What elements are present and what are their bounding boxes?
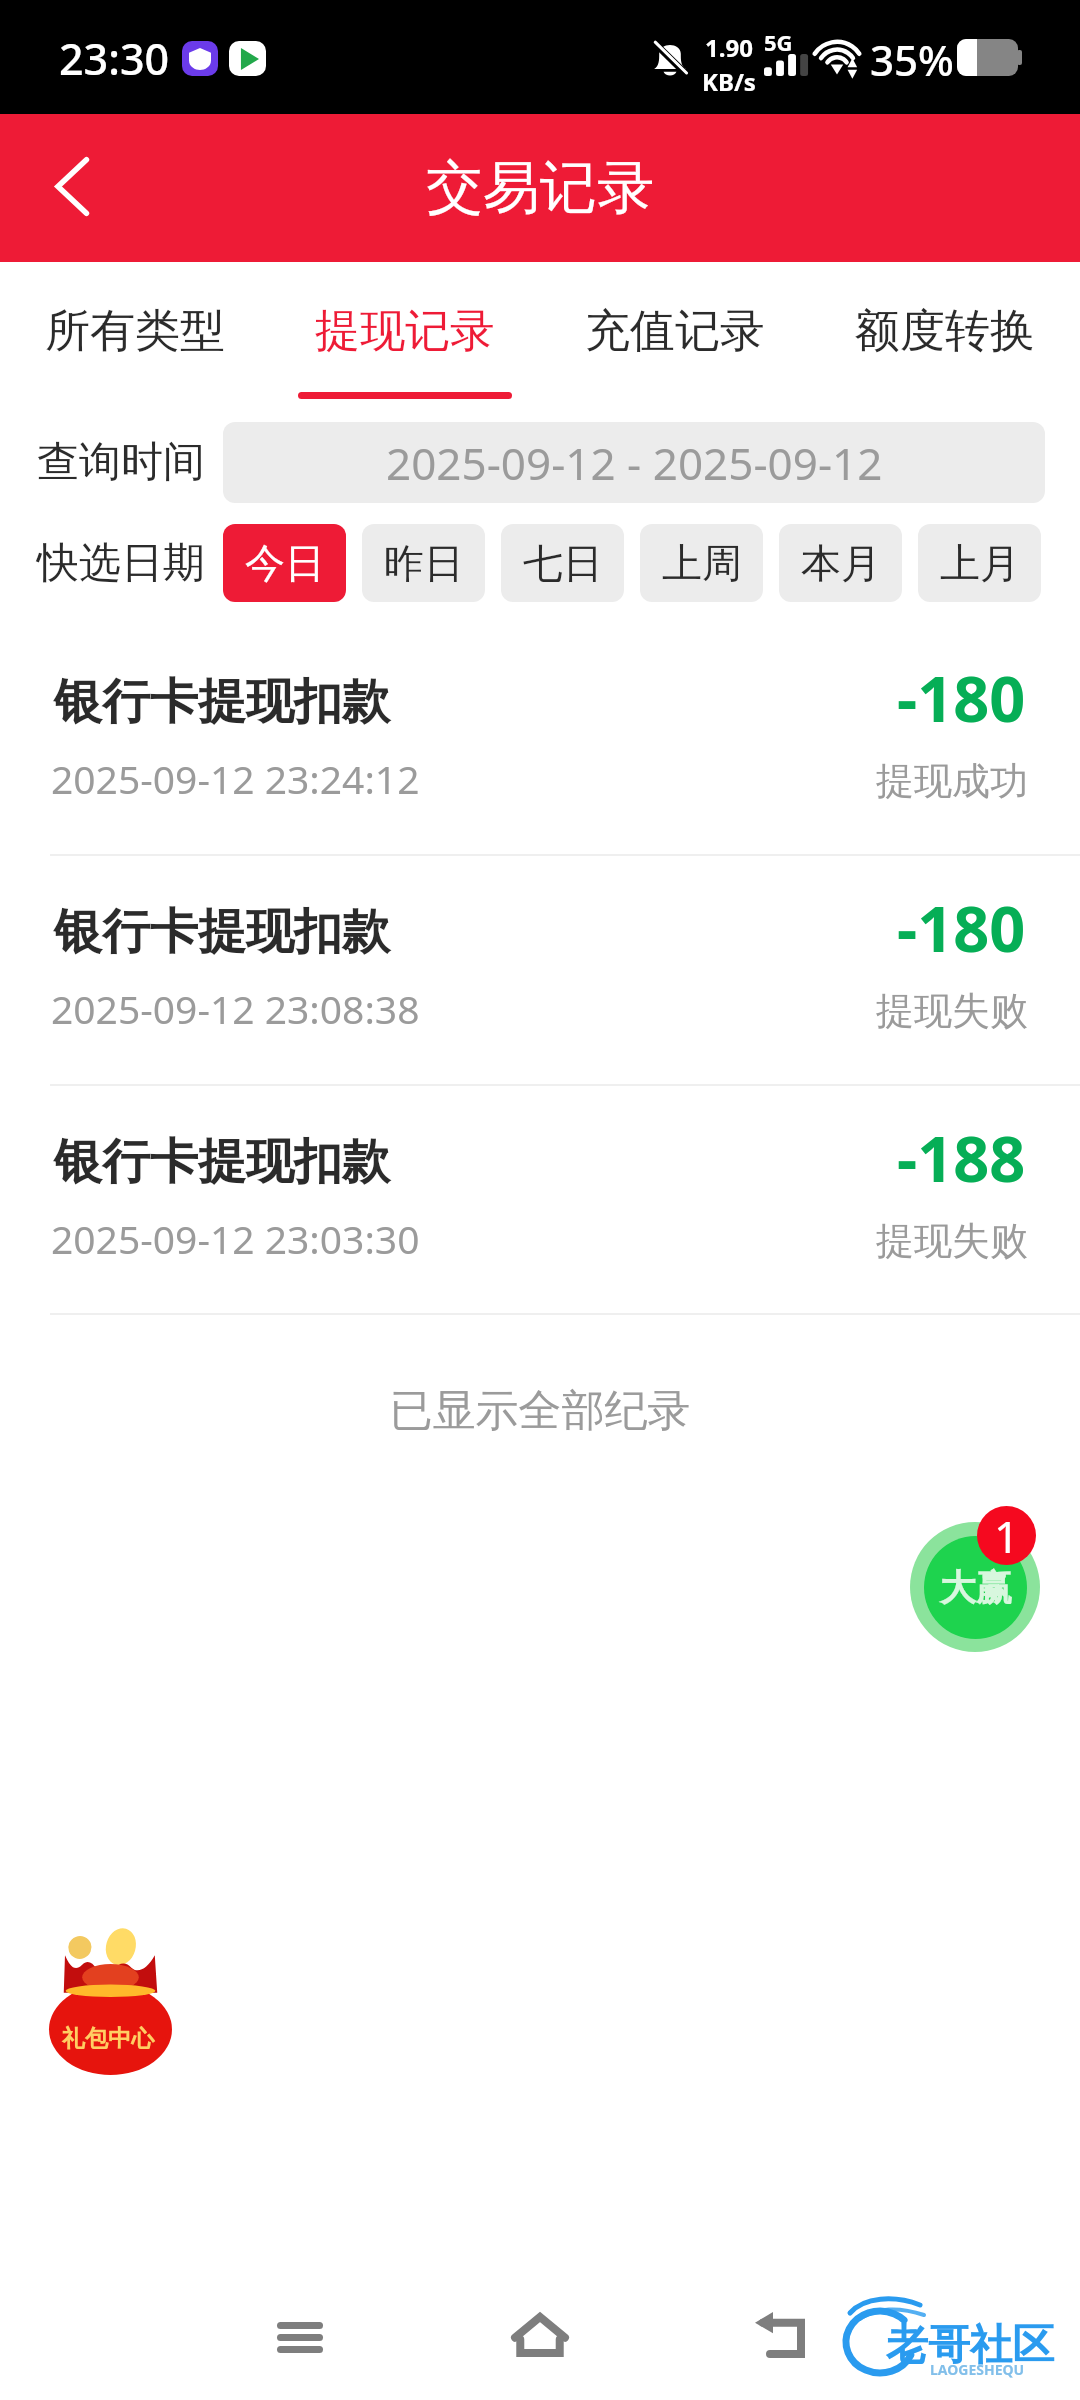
- staticText: 快选日期: [37, 537, 205, 590]
- staticText: 交易记录: [426, 152, 654, 224]
- staticText: LAOGESHEQU: [930, 2360, 1025, 2379]
- staticText: 今日: [245, 538, 325, 588]
- staticText: 充值记录: [585, 303, 765, 360]
- button[interactable]: 额度转换: [810, 262, 1080, 422]
- button[interactable]: 大赢: [910, 1522, 1040, 1652]
- button[interactable]: Home: [480, 2292, 600, 2378]
- staticText: KB/s: [702, 65, 756, 98]
- staticText: 2025-09-12 23:24:12: [51, 752, 420, 805]
- staticText: 2025-09-12 23:03:30: [51, 1212, 420, 1265]
- button[interactable]: 礼包中心: [49, 1928, 172, 2075]
- staticText: 上月: [940, 538, 1020, 588]
- staticText: 提现记录: [315, 303, 495, 360]
- staticText: -180: [897, 885, 1026, 971]
- staticText: 5G: [764, 27, 793, 57]
- button[interactable]: 本月: [779, 524, 902, 602]
- staticText: 昨日: [384, 538, 464, 588]
- staticText: 本月: [801, 538, 881, 588]
- button[interactable]: 银行卡提现扣款: [0, 624, 1080, 852]
- button[interactable]: 充值记录: [540, 262, 810, 422]
- staticText: 提现失败: [876, 987, 1028, 1035]
- button[interactable]: Recent apps: [240, 2294, 360, 2380]
- staticText: 35%: [870, 31, 954, 88]
- button[interactable]: 2025-09-12 - 2025-09-12: [223, 422, 1045, 503]
- staticText: 2025-09-12 - 2025-09-12: [386, 433, 883, 493]
- staticText: 查询时间: [37, 436, 205, 489]
- staticText: 银行卡提现扣款: [54, 902, 390, 962]
- staticText: 提现成功: [876, 757, 1028, 805]
- staticText: 2025-09-12 23:08:38: [51, 982, 420, 1035]
- button[interactable]: 七日: [501, 524, 624, 602]
- button[interactable]: 上月: [918, 524, 1041, 602]
- staticText: 23:30: [59, 29, 170, 88]
- staticText: 七日: [523, 538, 603, 588]
- button[interactable]: 银行卡提现扣款: [0, 854, 1080, 1082]
- staticText: 大赢: [940, 1565, 1012, 1610]
- button[interactable]: Back: [720, 2293, 840, 2379]
- staticText: 上周: [662, 538, 742, 588]
- staticText: 额度转换: [855, 303, 1035, 360]
- staticText: 礼包中心: [62, 2024, 154, 2053]
- button[interactable]: 上周: [640, 524, 763, 602]
- staticText: 老哥社区: [886, 2319, 1054, 2372]
- staticText: 银行卡提现扣款: [54, 1132, 390, 1192]
- button[interactable]: 提现记录: [270, 262, 540, 422]
- staticText: 已显示全部纪录: [0, 1384, 1080, 1438]
- button[interactable]: 银行卡提现扣款: [0, 1084, 1080, 1312]
- button[interactable]: 今日: [223, 524, 346, 602]
- staticText: -188: [897, 1115, 1026, 1201]
- staticText: -180: [897, 655, 1026, 741]
- button[interactable]: 所有类型: [0, 262, 270, 422]
- staticText: 1.90: [705, 31, 753, 64]
- button[interactable]: 昨日: [362, 524, 485, 602]
- staticText: 1: [994, 1506, 1020, 1565]
- staticText: 提现失败: [876, 1217, 1028, 1265]
- staticText: 所有类型: [45, 303, 225, 360]
- button[interactable]: Back: [8, 112, 136, 260]
- staticText: 银行卡提现扣款: [54, 672, 390, 732]
